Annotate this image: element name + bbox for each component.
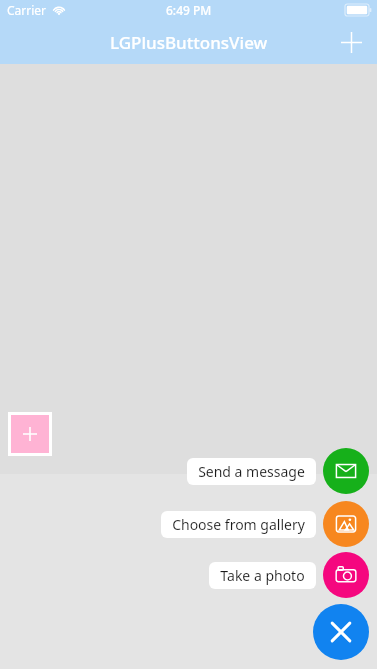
button[interactable]: Close menu: [313, 604, 369, 660]
button[interactable]: Take a photo: [323, 552, 369, 598]
button[interactable]: Take a photo: [209, 562, 316, 589]
staticText: Take a photo: [220, 566, 305, 585]
button[interactable]: Choose from gallery: [323, 501, 369, 547]
staticText: Carrier: [7, 2, 47, 18]
button[interactable]: Send a message: [187, 458, 316, 485]
staticText: Send a message: [198, 462, 305, 481]
button[interactable]: Send a message: [323, 448, 369, 494]
staticText: LGPlusButtonsView: [110, 31, 268, 54]
button[interactable]: Add: [333, 24, 369, 60]
button[interactable]: Choose from gallery: [161, 511, 316, 538]
staticText: 6:49 PM: [166, 2, 212, 18]
staticText: Choose from gallery: [172, 515, 305, 534]
button[interactable]: [11, 415, 49, 453]
